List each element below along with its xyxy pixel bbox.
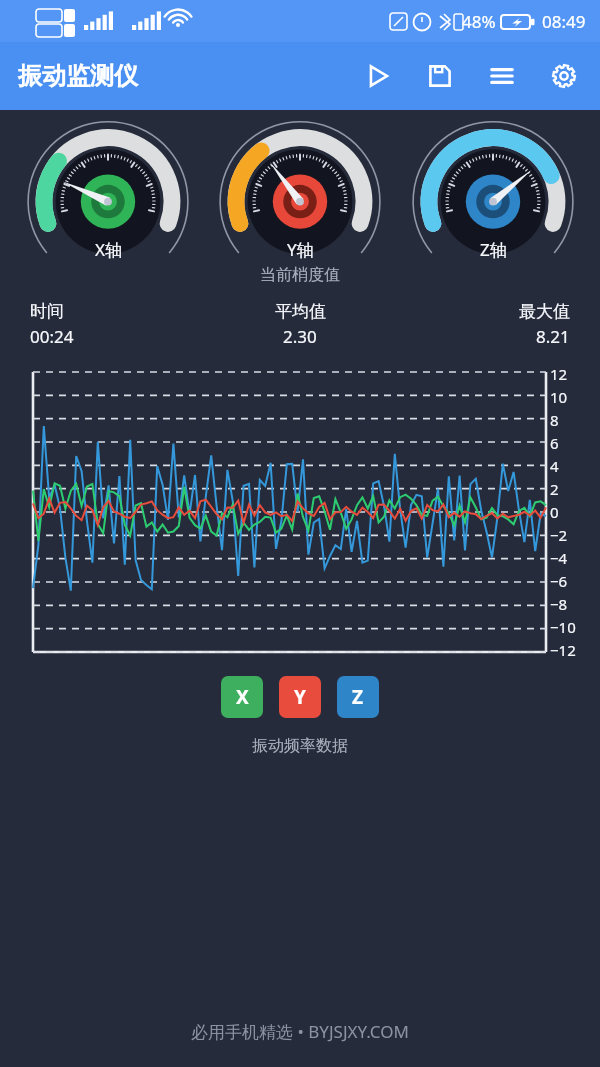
staticText: Y bbox=[294, 684, 306, 710]
button[interactable]: Settings bbox=[544, 56, 584, 96]
staticText: 00:24 bbox=[30, 325, 74, 348]
staticText: −8 bbox=[550, 594, 568, 614]
staticText: Z bbox=[352, 684, 364, 710]
staticText: 最大值 bbox=[519, 301, 570, 322]
staticText: 8 bbox=[550, 410, 559, 430]
button[interactable]: Y bbox=[279, 676, 321, 718]
staticText: −2 bbox=[550, 525, 568, 545]
staticText: 振动监测仪 bbox=[18, 61, 138, 91]
staticText: −4 bbox=[550, 548, 568, 568]
staticText: 时间 bbox=[30, 301, 64, 322]
staticText: 0 bbox=[550, 502, 559, 522]
staticText: −10 bbox=[550, 617, 576, 637]
staticText: 振动频率数据 bbox=[0, 736, 600, 756]
staticText: 48% bbox=[462, 10, 496, 33]
staticText: 2.30 bbox=[283, 325, 317, 348]
staticText: 平均值 bbox=[275, 301, 326, 322]
staticText: 08:49 bbox=[542, 10, 586, 33]
staticText: 4 bbox=[550, 456, 559, 476]
button[interactable]: Menu bbox=[482, 56, 522, 96]
staticText: −12 bbox=[550, 640, 576, 660]
staticText: 12 bbox=[550, 364, 568, 384]
staticText: 8.21 bbox=[536, 325, 570, 348]
staticText: 10 bbox=[550, 387, 568, 407]
staticText: Z轴 bbox=[480, 238, 507, 261]
staticText: X bbox=[236, 684, 249, 710]
staticText: 必用手机精选 • BYJSJXY.COM bbox=[0, 1020, 600, 1043]
staticText: 2 bbox=[550, 479, 559, 499]
button[interactable]: Save bbox=[420, 56, 460, 96]
button[interactable]: Z bbox=[337, 676, 379, 718]
staticText: 当前梢度值 bbox=[0, 265, 600, 285]
staticText: −6 bbox=[550, 571, 568, 591]
staticText: 6 bbox=[550, 433, 559, 453]
staticText: Y轴 bbox=[287, 238, 314, 261]
staticText: X轴 bbox=[95, 238, 122, 261]
button[interactable]: X bbox=[221, 676, 263, 718]
button[interactable]: Play bbox=[358, 56, 398, 96]
